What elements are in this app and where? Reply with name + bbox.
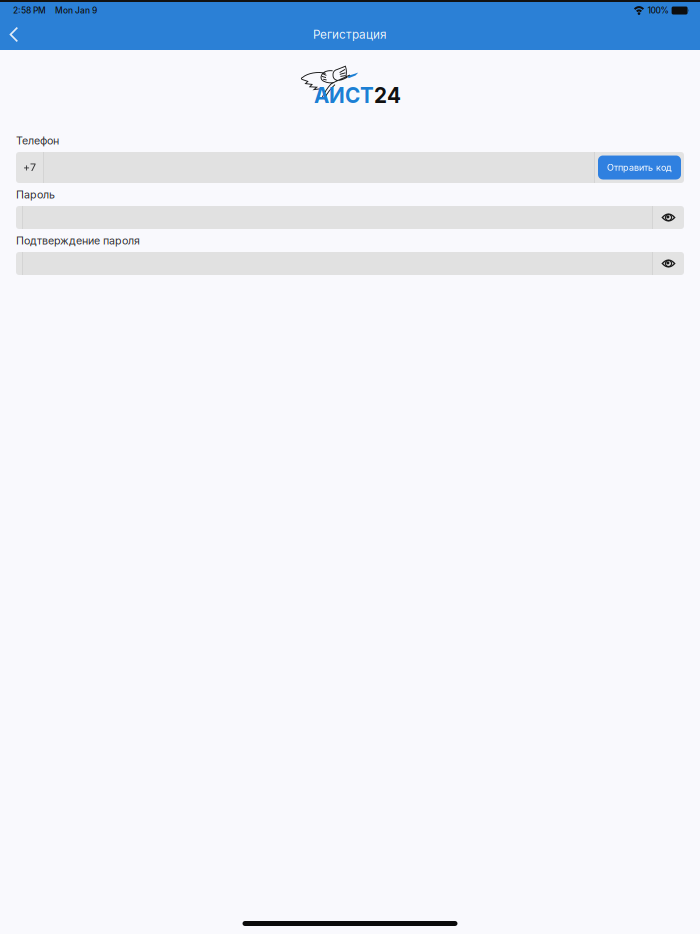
staticText: Регистрация xyxy=(313,27,387,42)
staticText: Отправить код xyxy=(607,162,672,173)
button[interactable]: Show Подтверждение пароля xyxy=(653,252,684,275)
staticText: Подтверждение пароля xyxy=(16,234,140,247)
staticText: Mon Jan 9 xyxy=(55,5,97,16)
button[interactable]: Back xyxy=(0,19,33,49)
staticText: +7 xyxy=(23,161,36,174)
staticText: 24 xyxy=(374,83,401,108)
staticText: 2:58 PM xyxy=(13,5,46,16)
button[interactable]: Отправить код xyxy=(598,155,681,179)
staticText: АИСТ xyxy=(314,83,374,108)
staticText: Телефон xyxy=(16,134,59,147)
staticText: 100% xyxy=(647,5,668,16)
staticText: Пароль xyxy=(16,188,55,201)
button[interactable]: Show Пароль xyxy=(653,206,684,229)
